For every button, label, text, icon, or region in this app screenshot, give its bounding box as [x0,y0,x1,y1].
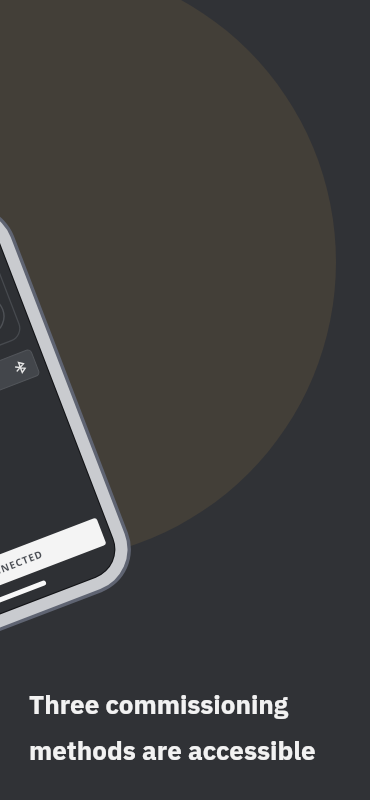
staticText: Three commissioning [29,687,289,721]
staticText: methods are accessible [29,733,316,767]
